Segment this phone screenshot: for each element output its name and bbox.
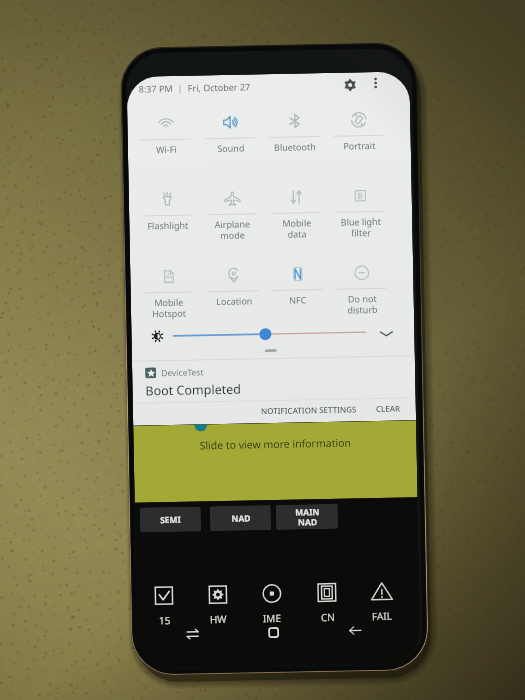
button[interactable]: Airplane mode (200, 189, 265, 265)
staticText: Flashlight (147, 219, 188, 231)
button[interactable]: NAD (210, 505, 271, 531)
staticText: Boot Completed (145, 381, 242, 399)
button[interactable]: Sound (198, 113, 264, 189)
staticText: CLEAR (376, 403, 401, 414)
button[interactable]: CN (304, 576, 349, 624)
staticText: Do not disturb (347, 292, 378, 316)
staticText: Location (216, 294, 253, 307)
staticText: Sound (217, 141, 245, 154)
button[interactable]: NFC (265, 265, 330, 341)
button[interactable]: FAIL (359, 574, 404, 623)
staticText: NOTIFICATION SETTINGS (261, 403, 357, 416)
button[interactable]: SEMI (140, 506, 201, 533)
button[interactable]: Flashlight (135, 190, 200, 267)
button[interactable]: NOTIFICATION SETTINGS (257, 400, 361, 419)
staticText: NFC (289, 293, 307, 306)
button[interactable]: IME (249, 577, 294, 625)
button[interactable]: CLEAR (372, 399, 405, 417)
button[interactable]: Home (257, 616, 289, 648)
staticText: DeviceTest (161, 366, 204, 379)
button[interactable]: MAIN NAD (276, 504, 338, 530)
staticText: HW (210, 612, 227, 626)
button[interactable]: Portrait (326, 111, 392, 187)
staticText: FAIL (372, 609, 393, 623)
button[interactable]: More options (365, 73, 386, 93)
button[interactable]: Do not disturb (329, 264, 394, 340)
staticText: IME (263, 611, 282, 625)
staticText: Airplane mode (214, 217, 251, 241)
staticText: SEMI (160, 514, 181, 526)
button[interactable]: Location (201, 266, 266, 342)
button[interactable]: Settings (338, 73, 361, 96)
staticText: Slide to view more information (199, 435, 352, 452)
staticText: Mobile Hotspot (152, 296, 186, 319)
button[interactable]: HW (195, 578, 240, 626)
button[interactable]: Brightness (149, 328, 166, 344)
button[interactable]: Wi-Fi (133, 114, 199, 191)
staticText: CN (321, 610, 335, 624)
button[interactable]: DeviceTest (145, 365, 204, 379)
staticText: Bluetooth (274, 140, 316, 153)
staticText: 8:37 PM (139, 82, 173, 95)
staticText: Portrait (343, 139, 376, 152)
staticText: Mobile data (282, 216, 312, 240)
staticText: NAD (231, 512, 251, 525)
button[interactable]: Recents (176, 617, 208, 650)
button[interactable]: Expand quick settings (376, 324, 397, 344)
button[interactable]: Back (339, 614, 371, 647)
staticText: Wi-Fi (156, 143, 177, 155)
staticText: 15 (159, 613, 171, 627)
button[interactable]: Blue light filter (328, 187, 393, 263)
staticText: Blue light filter (340, 215, 382, 239)
button[interactable]: 15 (141, 579, 186, 627)
staticText: | (173, 82, 188, 94)
staticText: Fri, October 27 (188, 80, 251, 94)
button[interactable]: Bluetooth (262, 112, 328, 188)
staticText: MAIN NAD (295, 506, 320, 528)
button[interactable]: Mobile Hotspot (136, 267, 201, 344)
button[interactable]: Mobile data (264, 188, 329, 264)
